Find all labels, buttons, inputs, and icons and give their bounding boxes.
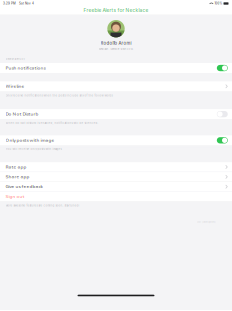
staticText: Sign out — [6, 194, 25, 199]
staticText: Sat Nov 4 — [16, 2, 34, 5]
staticText: Rate app — [6, 164, 27, 170]
button[interactable]: Push notifications — [0, 63, 232, 73]
staticText: Freebie Alerts for Necklace — [83, 7, 148, 13]
button[interactable]: Rate app — [0, 162, 232, 172]
staticText: More awesome features are coming soon, s… — [6, 204, 80, 207]
staticText: Wireline — [6, 83, 25, 89]
staticText: 3:29 PM — [3, 2, 16, 5]
staticText: Do Not Disturb — [6, 111, 39, 117]
staticText: Receive alerts by — [6, 57, 25, 61]
button[interactable]: Wireline — [0, 81, 232, 91]
staticText: 100% — [213, 2, 223, 5]
staticText: When Do Not Disturb is enabled, notifica… — [6, 121, 99, 124]
staticText: Share app — [6, 174, 30, 180]
staticText: Push notifications — [6, 65, 46, 71]
staticText: Give us feedback — [6, 184, 43, 190]
button[interactable]: Only posts with image — [0, 135, 232, 145]
button[interactable]: Sign out — [0, 192, 232, 201]
button[interactable]: Share app — [0, 172, 232, 182]
staticText: v0.1.1 (development) — [197, 221, 216, 224]
staticText: Rodolfo Aromi — [100, 40, 131, 46]
button[interactable]: Do Not Disturb — [0, 109, 232, 119]
staticText: Westlake · Member since 2016 — [98, 48, 133, 51]
button[interactable]: Give us feedback — [0, 182, 232, 191]
staticText: Only posts with image — [6, 137, 55, 143]
staticText: You will receive only posts with images — [6, 147, 62, 150]
staticText: Only receive notifications when the post… — [6, 94, 113, 97]
